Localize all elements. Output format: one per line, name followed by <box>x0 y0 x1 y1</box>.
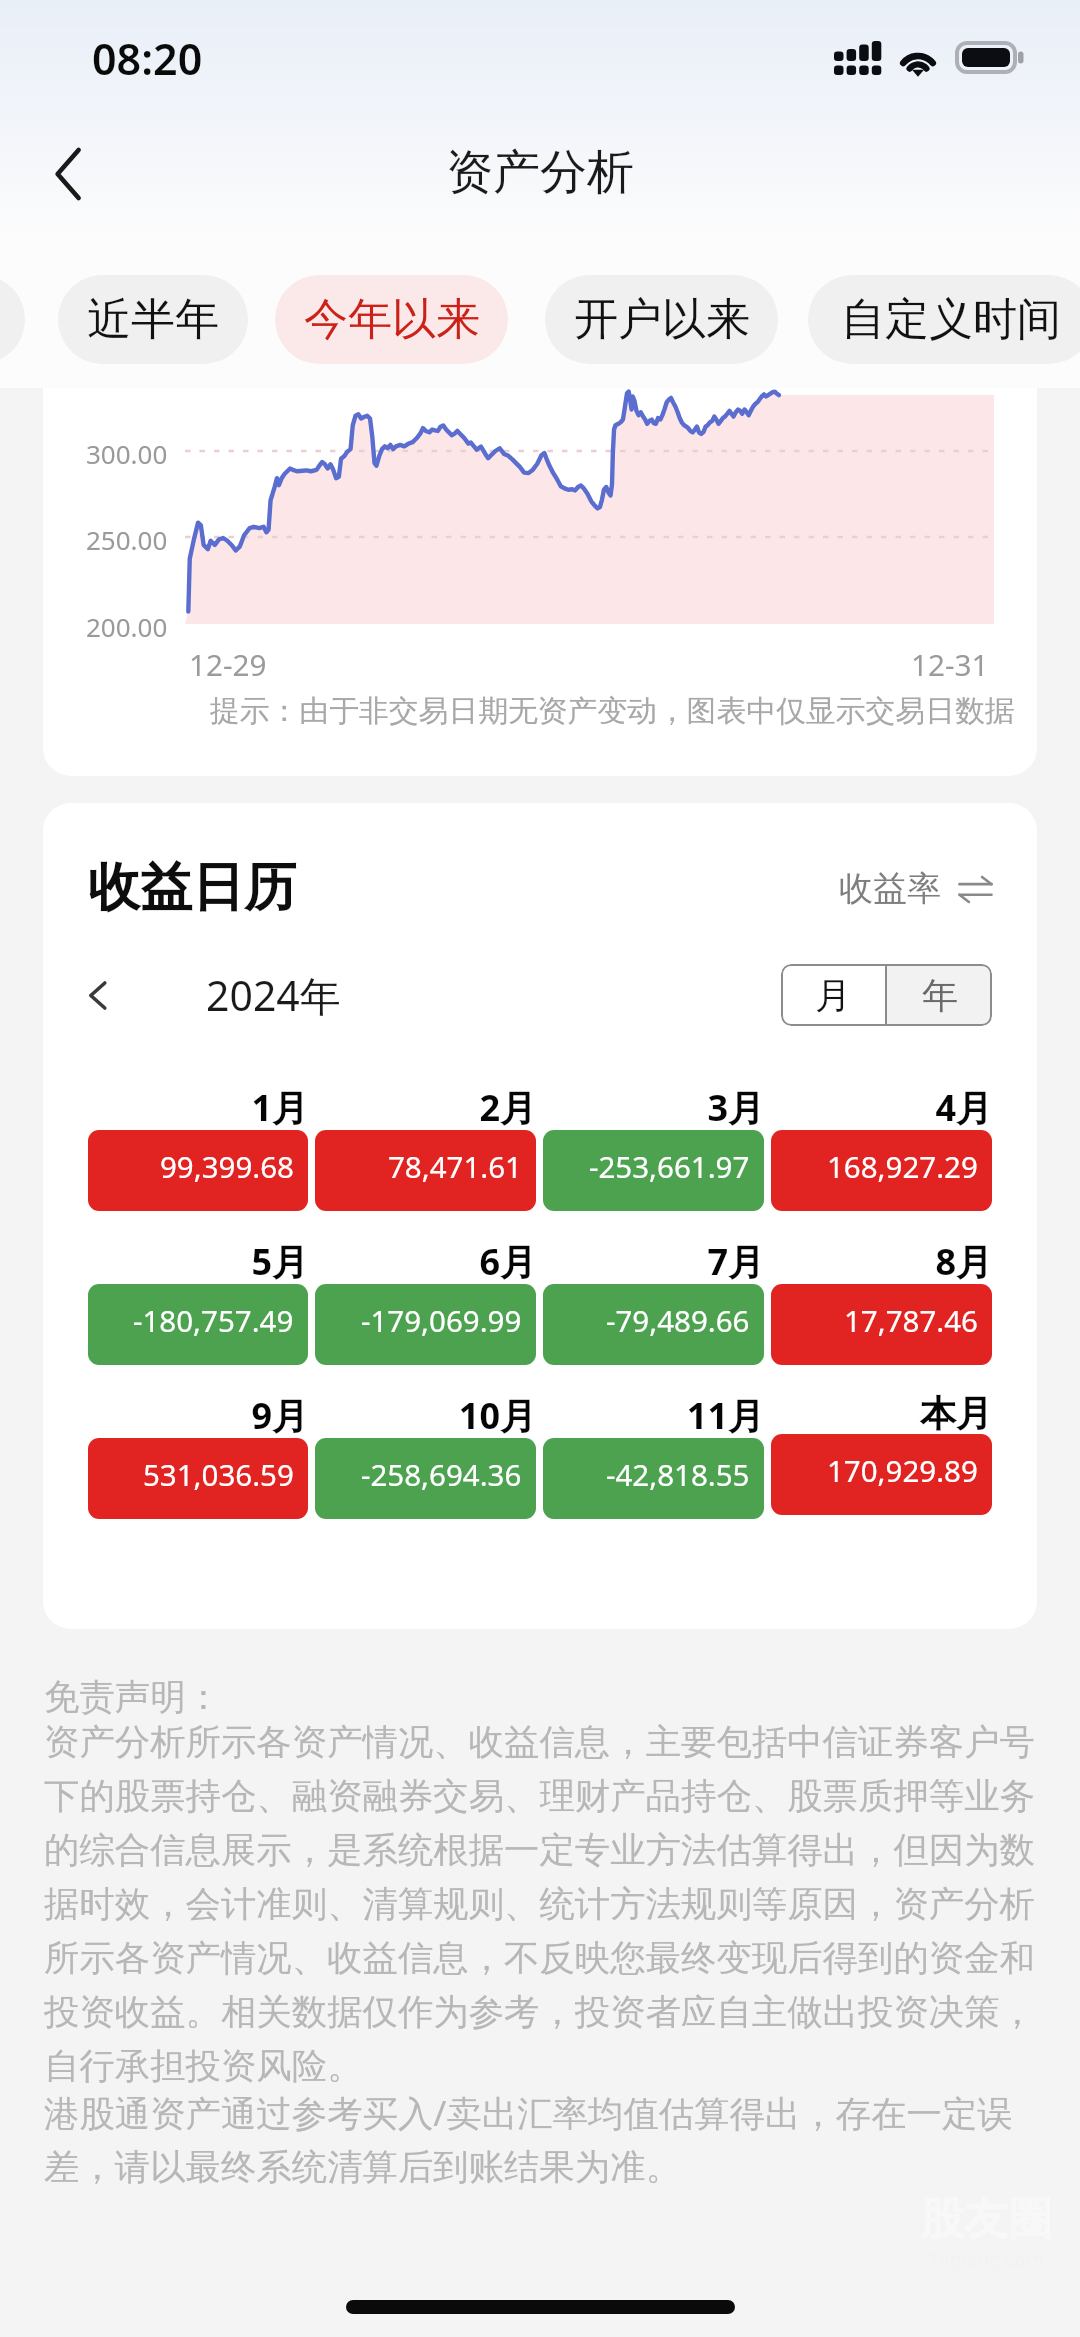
staticText: 收益率 <box>839 867 941 910</box>
staticText: 开户以来 <box>574 292 750 347</box>
staticText: -179,069.99 <box>361 1300 522 1340</box>
button[interactable]: -253,661.97 <box>543 1130 764 1211</box>
staticText: 12-29 <box>189 644 267 684</box>
staticText: 收益日历 <box>88 855 296 921</box>
staticText: 2024年 <box>206 967 341 1023</box>
button[interactable]: -42,818.55 <box>543 1438 764 1519</box>
staticText: 250.00 <box>86 522 168 557</box>
staticText: 5月 <box>88 1237 308 1286</box>
staticText: -253,661.97 <box>589 1146 750 1186</box>
button[interactable]: 今年以来 <box>275 275 508 364</box>
button[interactable]: 开户以来 <box>545 275 778 364</box>
staticText: 港股通资产通过参考买入/卖出汇率均值估算得出，存在一定误差，请以最终系统清算后到… <box>44 2088 1042 2189</box>
staticText: 2月 <box>315 1083 536 1132</box>
staticText: 168,927.29 <box>827 1146 978 1186</box>
staticText: 8月 <box>771 1237 992 1286</box>
staticText: 6月 <box>315 1237 536 1286</box>
button[interactable]: -180,757.49 <box>88 1284 308 1365</box>
button[interactable]: 531,036.59 <box>88 1438 308 1519</box>
button[interactable]: 168,927.29 <box>771 1130 992 1211</box>
button[interactable]: 170,929.89 <box>771 1434 992 1515</box>
staticText: -180,757.49 <box>133 1300 294 1340</box>
staticText: 10月 <box>315 1391 536 1440</box>
button[interactable]: Previous year <box>66 963 130 1027</box>
button[interactable]: -179,069.99 <box>315 1284 536 1365</box>
button[interactable]: 近一月 <box>0 275 25 364</box>
staticText: 资产分析所示各资产情况、收益信息，主要包括中信证券客户号下的股票持仓、融资融券交… <box>44 1720 1042 2088</box>
button[interactable]: 99,399.68 <box>88 1130 308 1211</box>
button[interactable]: 近半年 <box>58 275 248 364</box>
button[interactable]: -79,489.66 <box>543 1284 764 1365</box>
button[interactable]: 年 <box>887 964 992 1026</box>
staticText: 资产分析 <box>446 143 634 202</box>
staticText: 3月 <box>543 1083 764 1132</box>
staticText: 99,399.68 <box>160 1146 294 1186</box>
staticText: 本月 <box>771 1391 992 1436</box>
staticText: 1月 <box>88 1083 308 1132</box>
button[interactable]: 17,787.46 <box>771 1284 992 1365</box>
staticText: 7月 <box>543 1237 764 1286</box>
staticText: 提示：由于非交易日期无资产变动，图表中仅显示交易日数据 <box>210 692 1015 730</box>
staticText: 78,471.61 <box>388 1146 522 1186</box>
staticText: 免责声明： <box>44 1675 221 1720</box>
button[interactable]: Switch between yield rate and amount <box>839 867 992 910</box>
button[interactable]: Back <box>24 129 114 219</box>
staticText: -42,818.55 <box>606 1454 750 1494</box>
staticText: 今年以来 <box>304 292 480 347</box>
button[interactable]: 自定义时间 <box>808 275 1080 364</box>
staticText: 自定义时间 <box>841 292 1061 347</box>
button[interactable]: 78,471.61 <box>315 1130 536 1211</box>
staticText: 月 <box>815 973 851 1018</box>
staticText: 12-31 <box>911 644 989 684</box>
staticText: 11月 <box>543 1391 764 1440</box>
staticText: 4月 <box>771 1083 992 1132</box>
staticText: -258,694.36 <box>361 1454 522 1494</box>
staticText: 08:20 <box>92 29 203 88</box>
staticText: 300.00 <box>86 436 168 471</box>
button[interactable]: 月 <box>781 964 885 1026</box>
staticText: 9月 <box>88 1391 308 1440</box>
staticText: 531,036.59 <box>143 1454 294 1494</box>
staticText: -79,489.66 <box>606 1300 750 1340</box>
staticText: 200.00 <box>86 609 168 644</box>
staticText: 17,787.46 <box>844 1300 978 1340</box>
staticText: 170,929.89 <box>827 1450 978 1490</box>
button[interactable]: -258,694.36 <box>315 1438 536 1519</box>
staticText: 年 <box>922 973 958 1018</box>
staticText: 近半年 <box>87 292 219 347</box>
